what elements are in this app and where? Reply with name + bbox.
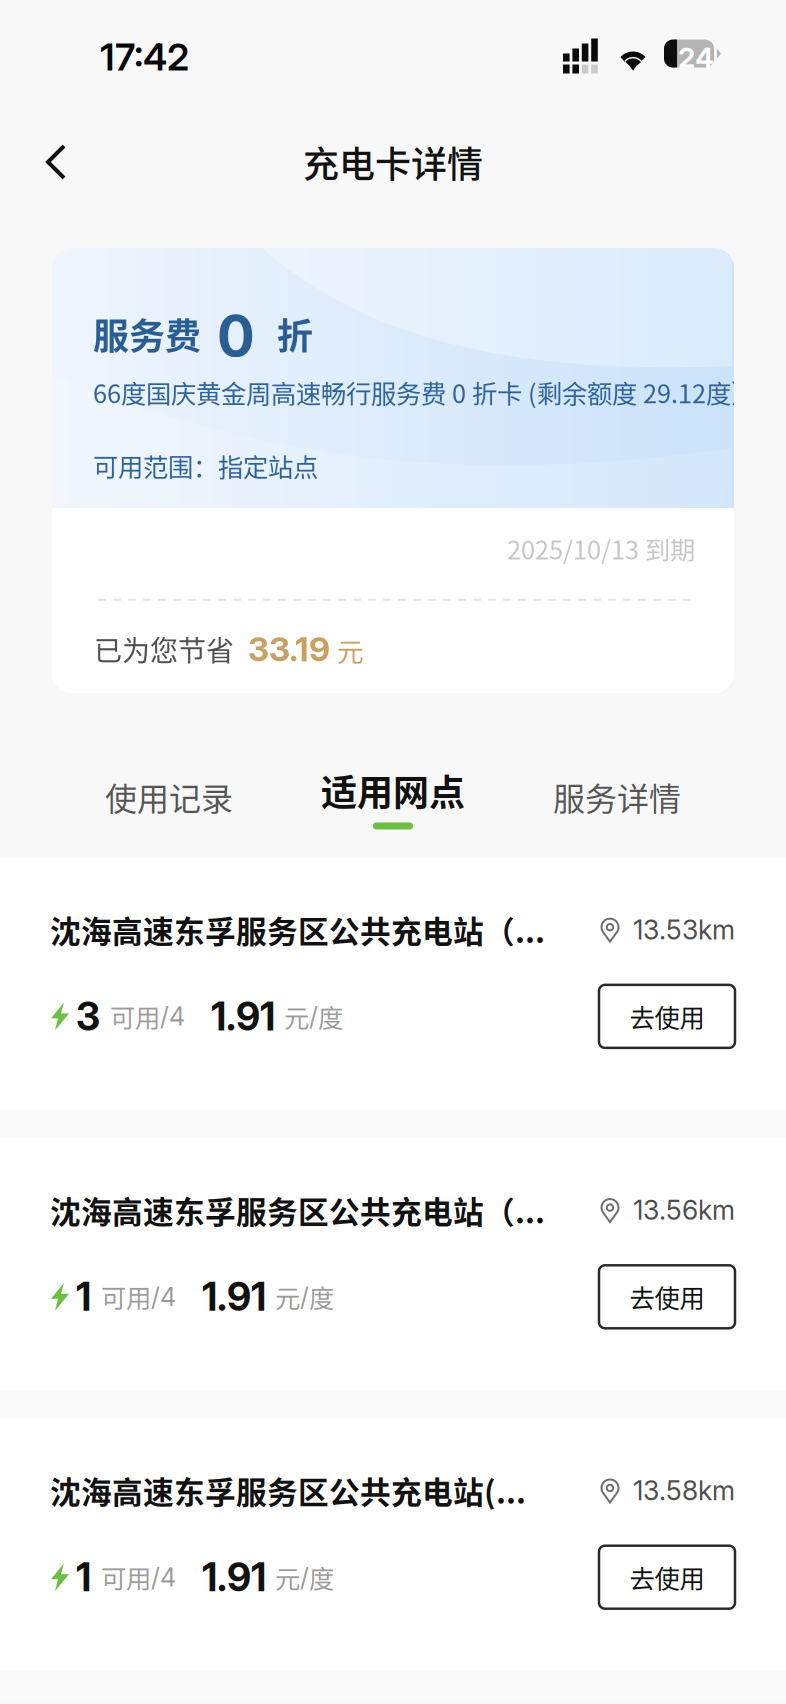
staticText: 服务详情	[553, 774, 681, 820]
staticText: 可用范围：指定站点	[93, 447, 318, 484]
staticText: 3	[76, 993, 100, 1040]
staticText: /	[309, 1001, 318, 1032]
button[interactable]: 服务详情	[543, 774, 691, 820]
staticText: 1.91	[202, 1273, 266, 1320]
button[interactable]: 沈海高速东孚服务区公共充电站（...	[0, 857, 786, 1110]
staticText: 已为您节省	[94, 629, 234, 669]
staticText: /	[300, 1281, 309, 1312]
staticText: 33.19	[248, 629, 330, 669]
staticText: 元	[337, 631, 364, 669]
staticText: 沈海高速东孚服务区公共充电站（...	[50, 907, 545, 952]
staticText: 元	[284, 998, 309, 1035]
staticText: 66度国庆黄金周高速畅行服务费 0 折卡 (剩余额度 29.12度）	[93, 374, 756, 410]
staticText: 1.91	[211, 993, 275, 1040]
staticText: /4	[151, 1562, 176, 1593]
staticText: 适用网点	[321, 764, 465, 816]
staticText: 可用	[110, 998, 160, 1035]
staticText: 2025/10/13 到期	[507, 530, 695, 567]
staticText: /4	[160, 1001, 185, 1032]
staticText: 沈海高速东孚服务区公共充电站（...	[50, 1188, 545, 1232]
staticText: 可用	[101, 1278, 151, 1315]
staticText: 元	[275, 1278, 300, 1315]
staticText: /4	[151, 1281, 176, 1312]
staticText: 13.56km	[633, 1194, 735, 1226]
staticText: 1	[76, 1554, 91, 1601]
staticText: 充电卡详情	[303, 136, 483, 188]
staticText: 去使用	[629, 1278, 704, 1315]
staticText: 13.58km	[633, 1474, 735, 1507]
staticText: /	[300, 1562, 309, 1593]
staticText: 去使用	[629, 1559, 704, 1596]
staticText: 服务费	[93, 308, 201, 360]
button[interactable]: 适用网点	[319, 764, 467, 829]
button[interactable]: 返回	[38, 139, 90, 185]
staticText: 度	[309, 1559, 334, 1596]
staticText: 度	[318, 998, 343, 1035]
staticText: 1.91	[202, 1554, 266, 1601]
staticText: 元	[275, 1559, 300, 1596]
staticText: 度	[309, 1278, 334, 1315]
staticText: 去使用	[629, 998, 704, 1035]
staticText: 24	[678, 41, 714, 74]
staticText: 17:42	[100, 34, 189, 80]
staticText: 0	[217, 302, 255, 370]
staticText: 沈海高速东孚服务区公共充电站(...	[50, 1468, 526, 1513]
staticText: 折	[277, 308, 313, 360]
button[interactable]: 使用记录	[95, 774, 243, 820]
button[interactable]: 沈海高速东孚服务区公共充电站（...	[0, 1138, 786, 1390]
staticText: 使用记录	[105, 774, 233, 820]
staticText: 13.53km	[633, 913, 735, 946]
staticText: 可用	[101, 1559, 151, 1596]
button[interactable]: 沈海高速东孚服务区公共充电站(...	[0, 1418, 786, 1671]
staticText: 1	[76, 1273, 91, 1320]
